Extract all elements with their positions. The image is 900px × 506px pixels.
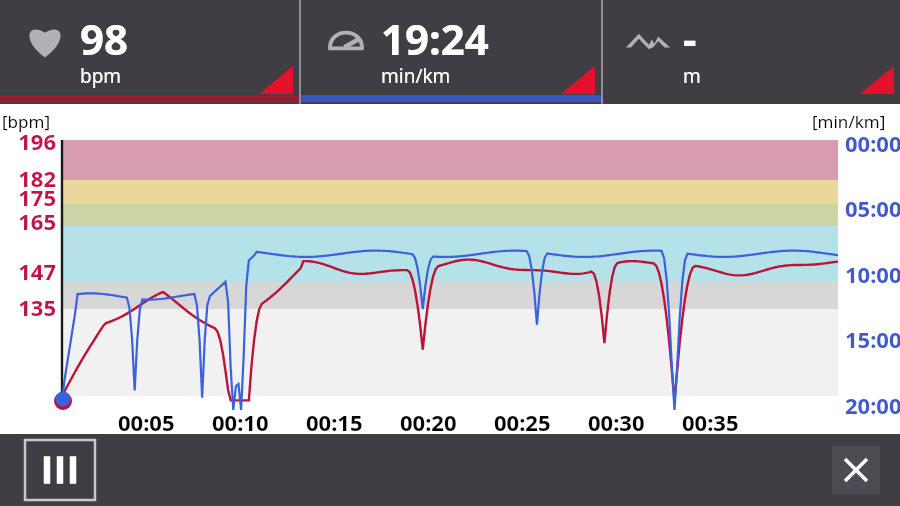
staticText: bpm xyxy=(80,63,122,89)
staticText: 05:00 xyxy=(845,193,900,223)
staticText: 00:10 xyxy=(212,407,269,437)
staticText: 98 xyxy=(80,10,129,67)
staticText: - xyxy=(683,10,697,67)
staticText: 19:24 xyxy=(381,10,489,67)
button[interactable]: 19:24 xyxy=(301,0,601,104)
staticText: 00:05 xyxy=(118,407,175,437)
button[interactable]: Close xyxy=(832,446,880,494)
staticText: 15:00 xyxy=(845,324,900,354)
button[interactable]: - xyxy=(603,0,900,104)
button[interactable]: 98 xyxy=(0,0,299,104)
staticText: 00:00 xyxy=(845,128,900,158)
staticText: 165 xyxy=(0,206,56,236)
staticText: 00:25 xyxy=(494,407,551,437)
staticText: 00:30 xyxy=(588,407,645,437)
staticText: 135 xyxy=(0,292,56,322)
staticText: 147 xyxy=(0,256,56,286)
staticText: min/km xyxy=(381,63,451,89)
button[interactable]: Pause xyxy=(25,440,95,500)
staticText: 182 xyxy=(0,163,56,193)
staticText: 196 xyxy=(0,126,56,156)
staticText: 175 xyxy=(0,182,56,212)
staticText: [bpm] xyxy=(2,110,50,133)
staticText: 00:35 xyxy=(682,407,739,437)
staticText: 00:20 xyxy=(400,407,457,437)
staticText: 00:15 xyxy=(306,407,363,437)
staticText: 10:00 xyxy=(845,259,900,289)
staticText: 20:00 xyxy=(845,390,900,420)
staticText: [min/km] xyxy=(812,110,886,133)
staticText: m xyxy=(683,63,701,89)
